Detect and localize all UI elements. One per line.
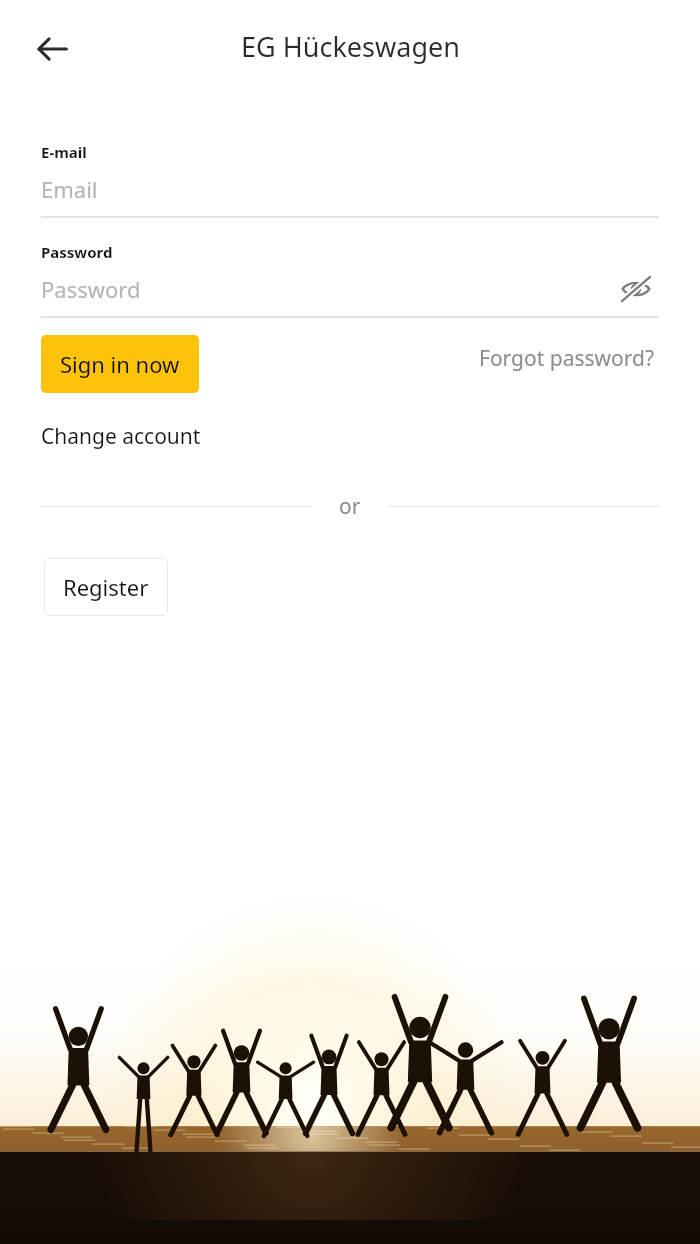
button[interactable]: Back bbox=[20, 17, 84, 81]
button[interactable]: Sign in now bbox=[41, 335, 199, 393]
button[interactable]: Forgot password? bbox=[475, 335, 659, 382]
staticText: E-mail bbox=[41, 142, 87, 162]
button[interactable]: Email bbox=[41, 162, 659, 216]
staticText: Forgot password? bbox=[479, 344, 655, 373]
staticText: Register bbox=[63, 572, 149, 602]
staticText: Password bbox=[41, 274, 141, 304]
button[interactable]: Register bbox=[44, 558, 168, 616]
staticText: Sign in now bbox=[60, 349, 180, 379]
staticText: EG Hückeswagen bbox=[241, 28, 460, 65]
staticText: Password bbox=[41, 242, 113, 262]
staticText: Email bbox=[41, 174, 98, 204]
staticText: or bbox=[339, 492, 361, 521]
staticText: Change account bbox=[41, 422, 201, 451]
button[interactable]: Show password bbox=[613, 266, 659, 312]
button[interactable]: Password bbox=[41, 262, 659, 316]
button[interactable]: Change account bbox=[41, 419, 201, 454]
